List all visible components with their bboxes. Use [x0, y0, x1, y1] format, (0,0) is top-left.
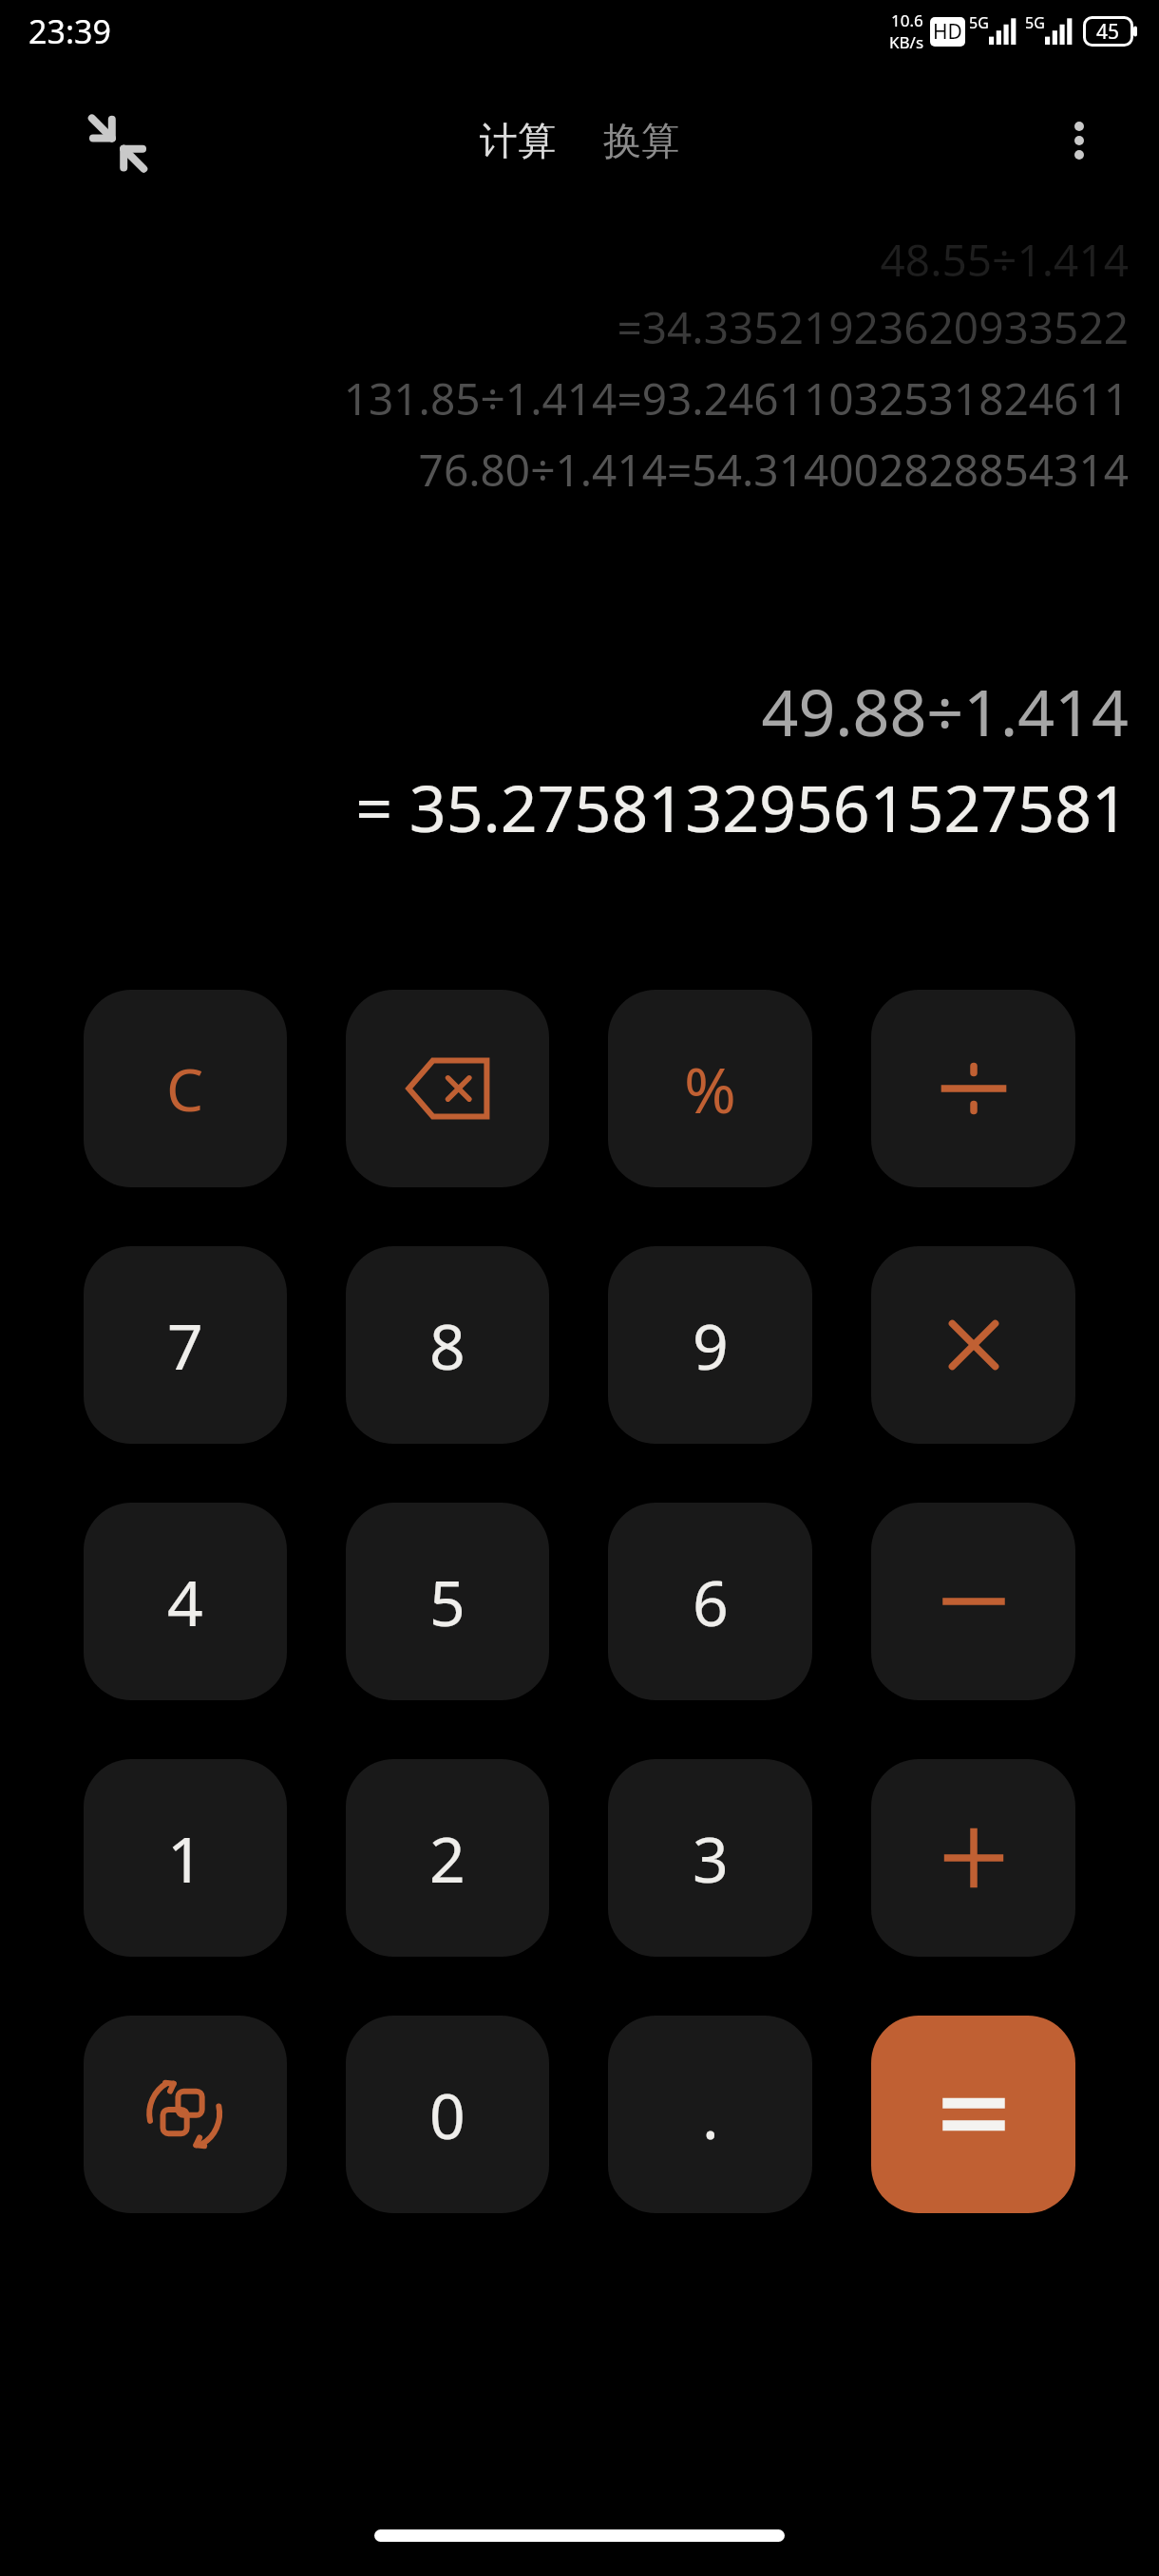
staticText: 1 — [167, 1815, 203, 1901]
staticText: 5G — [969, 12, 989, 33]
button[interactable]: 5 — [346, 1503, 549, 1700]
button[interactable]: 计算 — [466, 105, 569, 176]
button[interactable]: 1 — [84, 1759, 287, 1957]
button[interactable]: 9 — [608, 1246, 812, 1444]
staticText: % — [684, 1046, 736, 1131]
button[interactable]: 7 — [84, 1246, 287, 1444]
staticText: 5G — [1025, 12, 1045, 33]
button[interactable]: % — [608, 990, 812, 1187]
staticText: 4 — [167, 1559, 203, 1644]
staticText: C — [166, 1049, 204, 1128]
staticText: 2 — [429, 1815, 465, 1901]
staticText: = 35.27581329561527581 — [355, 763, 1129, 851]
button[interactable]: 0 — [346, 2016, 549, 2213]
button[interactable]: 6 — [608, 1503, 812, 1700]
staticText: 10.6 — [891, 9, 923, 31]
button[interactable] — [871, 2016, 1075, 2213]
button[interactable]: Collapse — [68, 91, 167, 190]
button[interactable]: 3 — [608, 1759, 812, 1957]
staticText: HD — [933, 18, 962, 46]
staticText: 计算 — [480, 117, 556, 164]
button[interactable] — [871, 990, 1075, 1187]
staticText: =34.33521923620933522 — [617, 297, 1129, 357]
button[interactable]: Unit convert — [84, 2016, 287, 2213]
button[interactable]: 2 — [346, 1759, 549, 1957]
staticText: 6 — [693, 1559, 729, 1644]
button[interactable]: Backspace — [346, 990, 549, 1187]
staticText: KB/s — [889, 31, 924, 53]
staticText: 76.80÷1.414=54.314002828854314 — [418, 440, 1129, 500]
button[interactable]: C — [84, 990, 287, 1187]
staticText: . — [702, 2072, 719, 2157]
staticText: 8 — [429, 1302, 465, 1388]
staticText: 48.55÷1.414 — [880, 230, 1129, 290]
button[interactable] — [871, 1246, 1075, 1444]
staticText: 49.88÷1.414 — [761, 667, 1129, 755]
button[interactable]: 8 — [346, 1246, 549, 1444]
staticText: 0 — [429, 2072, 465, 2157]
button[interactable]: More options — [1035, 97, 1123, 184]
button[interactable] — [871, 1759, 1075, 1957]
staticText: 131.85÷1.414=93.24611032531824611 — [343, 369, 1129, 428]
staticText: 9 — [693, 1302, 729, 1388]
staticText: 23:39 — [28, 9, 111, 53]
staticText: 5 — [429, 1559, 465, 1644]
button[interactable]: . — [608, 2016, 812, 2213]
staticText: 3 — [693, 1815, 729, 1901]
staticText: 7 — [167, 1302, 203, 1388]
button[interactable]: 4 — [84, 1503, 287, 1700]
button[interactable] — [871, 1503, 1075, 1700]
button[interactable]: 换算 — [590, 105, 693, 176]
staticText: 换算 — [603, 117, 679, 164]
staticText: 45 — [1096, 18, 1120, 46]
